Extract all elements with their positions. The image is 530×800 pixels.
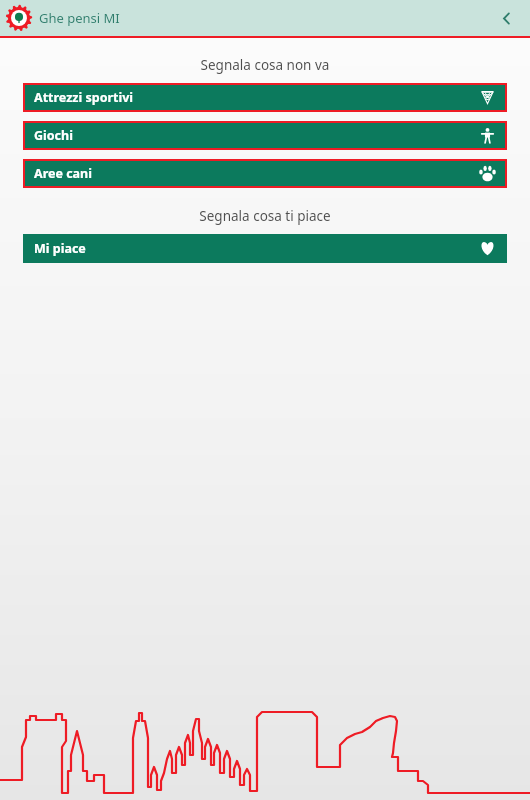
staticText: Attrezzi sportivi: [34, 89, 134, 106]
staticText: Segnala cosa non va: [0, 56, 530, 74]
button[interactable]: Mi piace: [23, 234, 507, 263]
button[interactable]: Giochi: [23, 121, 507, 150]
staticText: Aree cani: [34, 165, 92, 182]
staticText: Mi piace: [34, 240, 86, 257]
staticText: Segnala cosa ti piace: [0, 207, 530, 225]
button[interactable]: Back: [490, 2, 522, 34]
staticText: Giochi: [34, 127, 73, 144]
button[interactable]: Attrezzi sportivi: [23, 83, 507, 112]
staticText: Ghe pensi MI: [39, 9, 120, 27]
button[interactable]: Aree cani: [23, 159, 507, 188]
